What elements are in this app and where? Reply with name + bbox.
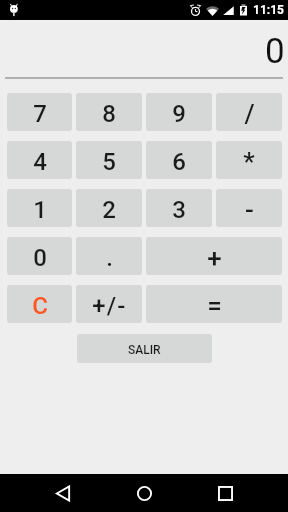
- staticText: 6: [172, 148, 186, 176]
- button[interactable]: 4: [7, 141, 72, 179]
- button[interactable]: 8: [76, 93, 142, 131]
- button[interactable]: 9: [146, 93, 212, 131]
- button[interactable]: -: [216, 189, 282, 227]
- staticText: 4: [33, 148, 47, 176]
- staticText: SALIR: [128, 343, 161, 357]
- staticText: /: [244, 99, 255, 129]
- button[interactable]: +/-: [76, 285, 142, 323]
- button[interactable]: 1: [7, 189, 72, 227]
- staticText: 7: [33, 100, 47, 128]
- staticText: 0: [33, 244, 47, 272]
- button[interactable]: +: [146, 237, 282, 275]
- staticText: *: [243, 147, 255, 177]
- button[interactable]: C: [7, 285, 72, 323]
- staticText: 9: [172, 100, 186, 128]
- button[interactable]: Back: [36, 474, 90, 512]
- button[interactable]: SALIR: [77, 334, 212, 363]
- staticText: 3: [172, 196, 186, 224]
- button[interactable]: 3: [146, 189, 212, 227]
- staticText: +: [207, 243, 222, 273]
- button[interactable]: Recent apps: [198, 474, 252, 512]
- staticText: C: [32, 292, 48, 320]
- staticText: 1: [33, 196, 47, 224]
- button[interactable]: 6: [146, 141, 212, 179]
- button[interactable]: Home: [117, 474, 171, 512]
- staticText: =: [207, 291, 222, 321]
- staticText: 5: [102, 148, 116, 176]
- staticText: +/-: [92, 292, 127, 320]
- button[interactable]: *: [216, 141, 282, 179]
- button[interactable]: 0: [7, 237, 72, 275]
- staticText: 11:15: [253, 3, 284, 17]
- button[interactable]: /: [216, 93, 282, 131]
- staticText: 0: [265, 31, 285, 72]
- staticText: 8: [102, 100, 116, 128]
- button[interactable]: 5: [76, 141, 142, 179]
- staticText: 2: [102, 196, 116, 224]
- staticText: -: [245, 195, 254, 225]
- button[interactable]: 7: [7, 93, 72, 131]
- button[interactable]: =: [146, 285, 282, 323]
- staticText: .: [106, 244, 113, 272]
- button[interactable]: .: [76, 237, 142, 275]
- button[interactable]: 2: [76, 189, 142, 227]
